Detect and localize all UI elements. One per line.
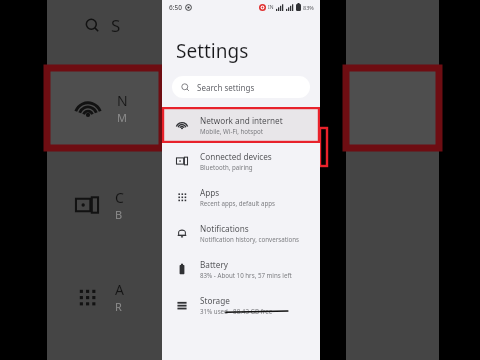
staticText: Bluetooth, pairing — [200, 163, 253, 171]
button[interactable]: Search settings — [172, 76, 310, 98]
button[interactable]: Network and internet — [162, 107, 320, 143]
staticText: A — [115, 280, 124, 299]
button[interactable]: Notifications — [162, 215, 320, 251]
staticText: Mobile, Wi-Fi, hotspot — [200, 127, 264, 135]
staticText: 83% — [303, 4, 314, 11]
button[interactable]: C — [47, 178, 162, 232]
staticText: 83% - About 10 hrs, 57 mins left — [200, 271, 292, 279]
staticText: Battery — [200, 259, 229, 270]
button[interactable]: Network and internet highlight — [346, 68, 439, 148]
staticText: Notification history, conversations — [200, 235, 300, 243]
button[interactable]: Network and internet — [47, 68, 162, 148]
button[interactable]: Battery — [162, 251, 320, 287]
staticText: R — [115, 299, 122, 314]
staticText: Search settings — [197, 82, 255, 93]
staticText: B — [115, 207, 123, 222]
button[interactable]: Connected devices — [162, 143, 320, 179]
staticText: S — [111, 14, 121, 37]
staticText: Apps — [200, 187, 220, 198]
staticText: C — [115, 188, 124, 207]
staticText: 6:50 — [169, 3, 182, 12]
staticText: N — [117, 91, 128, 110]
staticText: 31% used - 88.43 GB free — [200, 307, 273, 315]
staticText: Notifications — [200, 223, 249, 234]
staticText: Settings — [176, 38, 249, 64]
button[interactable]: Storage — [162, 287, 320, 323]
staticText: IN — [268, 4, 274, 11]
staticText: M — [117, 110, 127, 125]
button[interactable]: A — [47, 270, 162, 324]
staticText: Recent apps, default apps — [200, 199, 275, 207]
button[interactable]: Apps — [162, 179, 320, 215]
staticText: Storage — [200, 295, 230, 306]
staticText: Network and internet — [200, 115, 283, 126]
staticText: Connected devices — [200, 151, 272, 162]
